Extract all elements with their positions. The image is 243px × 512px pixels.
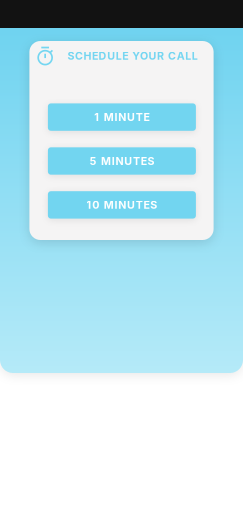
button[interactable]: 5 MINUTES [48,147,196,175]
staticText: 10 MINUTES [86,198,157,211]
staticText: SCHEDULE YOUR CALL [67,49,198,62]
staticText: 5 MINUTES [89,154,154,167]
button[interactable]: 1 MINUTE [48,103,196,131]
button[interactable]: 10 MINUTES [48,191,196,219]
staticText: 1 MINUTE [94,111,149,123]
